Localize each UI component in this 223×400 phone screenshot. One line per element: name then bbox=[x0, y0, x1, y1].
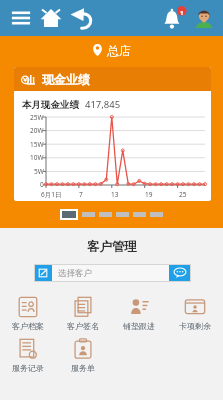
staticText: 10W bbox=[30, 153, 44, 162]
staticText: 本月现金业绩 bbox=[22, 99, 79, 111]
staticText: 客户管理 bbox=[87, 239, 137, 255]
button[interactable]: 客户档案 bbox=[0, 292, 55, 334]
button[interactable]: 服务单 bbox=[55, 334, 111, 376]
staticText: 19 bbox=[145, 190, 153, 199]
staticText: 20W bbox=[30, 126, 44, 135]
staticText: 6月1日 bbox=[41, 190, 62, 199]
staticText: 服务记录 bbox=[12, 363, 44, 373]
staticText: 现金业绩 bbox=[42, 72, 90, 87]
staticText: 417,845 bbox=[85, 98, 121, 111]
button[interactable]: 服务记录 bbox=[0, 334, 55, 376]
button[interactable]: Notifications bbox=[159, 0, 189, 36]
button[interactable]: Home bbox=[38, 0, 64, 36]
staticText: 铺垫跟进 bbox=[123, 321, 155, 331]
button[interactable]: Message bbox=[169, 264, 191, 282]
staticText: 15W bbox=[30, 140, 44, 149]
staticText: 服务单 bbox=[71, 363, 95, 373]
button[interactable]: Menu bbox=[8, 0, 34, 36]
staticText: 25 bbox=[179, 190, 187, 199]
staticText: 选择客户 bbox=[58, 268, 92, 279]
staticText: 1 bbox=[180, 9, 184, 17]
staticText: 5W bbox=[34, 167, 44, 176]
button[interactable]: Profile bbox=[189, 0, 219, 36]
staticText: 25W bbox=[30, 113, 44, 122]
staticText: 13 bbox=[111, 190, 119, 199]
button[interactable]: 总店 bbox=[0, 36, 223, 64]
staticText: 卡项剩余 bbox=[179, 321, 211, 331]
staticText: 总店 bbox=[107, 43, 131, 58]
staticText: 客户签名 bbox=[67, 321, 99, 331]
staticText: 客户档案 bbox=[12, 321, 44, 331]
button[interactable]: Back bbox=[68, 0, 94, 36]
button[interactable]: Edit customer bbox=[34, 264, 52, 282]
staticText: 0 bbox=[40, 180, 44, 189]
staticText: 7 bbox=[79, 190, 83, 199]
button[interactable]: 选择客户 bbox=[52, 264, 169, 282]
button[interactable]: 铺垫跟进 bbox=[111, 292, 167, 334]
button[interactable]: 客户签名 bbox=[55, 292, 111, 334]
button[interactable]: 卡项剩余 bbox=[167, 292, 223, 334]
button[interactable]: 现金业绩 bbox=[14, 67, 211, 201]
